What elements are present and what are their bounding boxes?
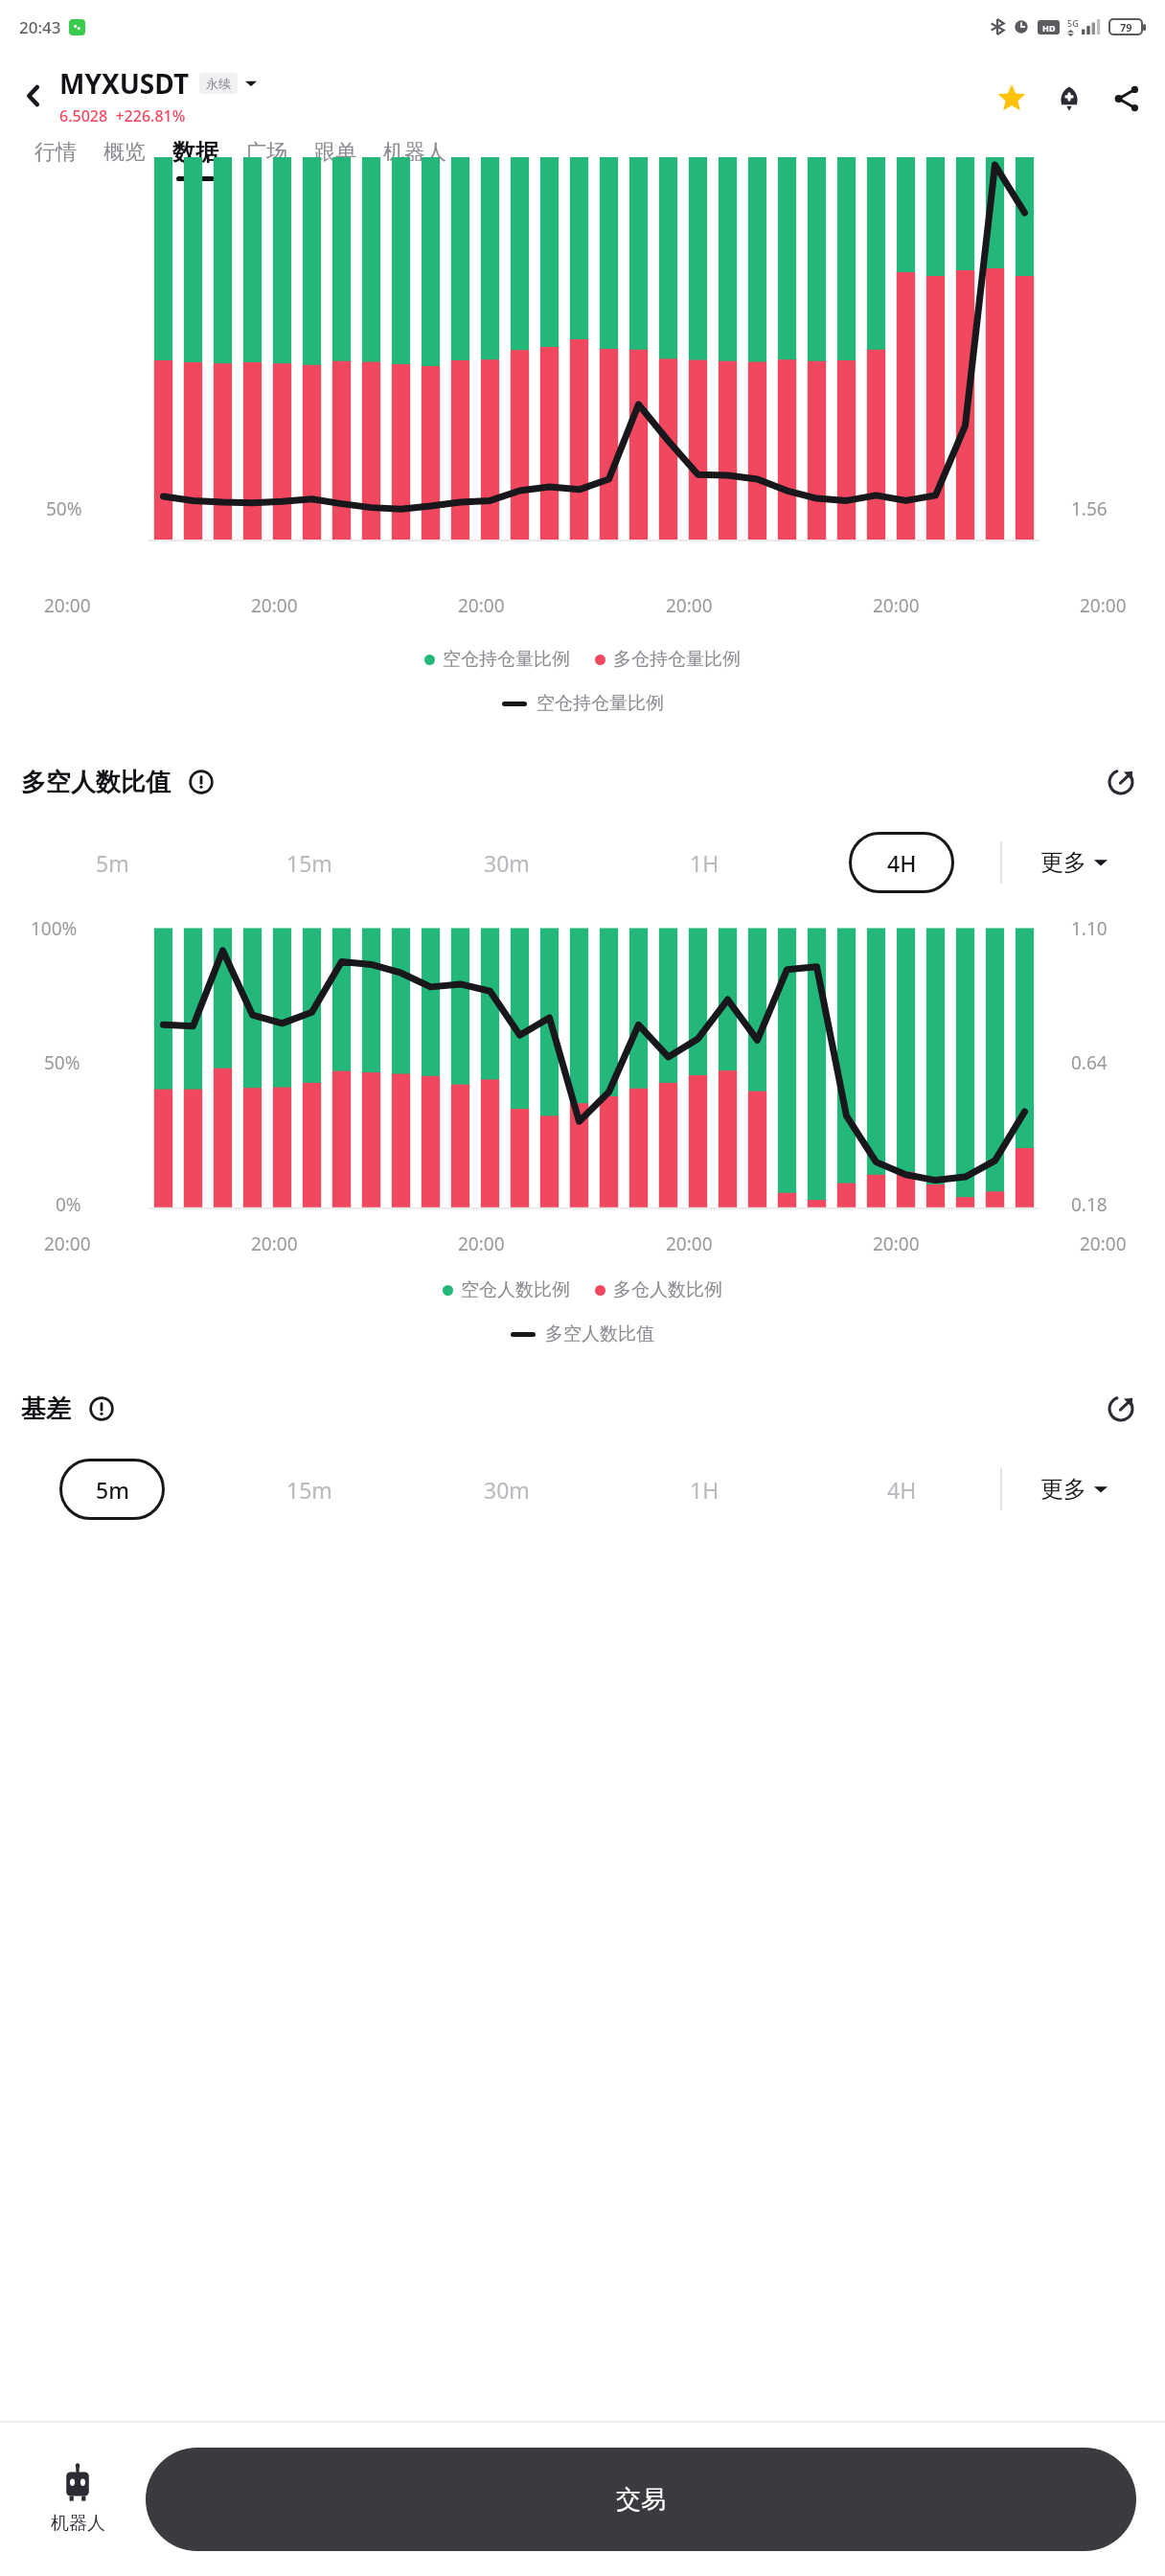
staticText: 0.64: [1071, 1050, 1108, 1075]
button[interactable]: 15m: [211, 1456, 408, 1523]
staticText: 永续: [206, 76, 231, 91]
staticText: 20:00: [666, 1231, 713, 1256]
staticText: 15m: [286, 848, 332, 878]
staticText: 更多: [1040, 1475, 1086, 1504]
button[interactable]: Expand chart: [1098, 1386, 1144, 1432]
staticText: 5m: [96, 848, 129, 878]
button[interactable]: 更多: [1002, 829, 1146, 896]
button[interactable]: 5m: [13, 829, 211, 896]
staticText: 20:00: [666, 593, 713, 618]
staticText: HD: [1042, 22, 1056, 34]
button[interactable]: 跟单: [301, 139, 370, 180]
staticText: 数据: [172, 138, 218, 167]
staticText: 机器人: [51, 2512, 105, 2535]
staticText: 20:00: [1080, 1231, 1127, 1256]
staticText: 20:00: [458, 593, 505, 618]
button[interactable]: 4H: [803, 829, 1000, 896]
staticText: 20:00: [44, 1231, 91, 1256]
staticText: 50%: [44, 1050, 80, 1075]
button[interactable]: Info: [182, 763, 220, 801]
staticText: 20:00: [1080, 593, 1127, 618]
button[interactable]: 数据: [159, 138, 232, 181]
staticText: 4H: [887, 848, 917, 878]
button[interactable]: Favorite: [989, 76, 1035, 122]
button[interactable]: 机器人: [25, 2423, 130, 2576]
staticText: 概览: [103, 139, 146, 166]
staticText: 5m: [96, 1475, 129, 1505]
button[interactable]: Expand chart: [1098, 759, 1144, 805]
staticText: 机器人: [383, 139, 446, 166]
button[interactable]: 1H: [605, 1456, 803, 1523]
staticText: 30m: [484, 848, 530, 878]
staticText: 6.5028 +226.81%: [59, 105, 186, 126]
button[interactable]: Alerts: [1046, 76, 1092, 122]
staticText: 多空人数比值: [545, 1322, 654, 1345]
staticText: 更多: [1040, 848, 1086, 877]
staticText: 多空人数比值: [21, 767, 171, 798]
button[interactable]: 4H: [803, 1456, 1000, 1523]
button[interactable]: Back: [10, 72, 57, 120]
staticText: 4H: [887, 1475, 917, 1505]
button[interactable]: 15m: [211, 829, 408, 896]
button[interactable]: Share: [1104, 76, 1150, 122]
staticText: 跟单: [314, 139, 356, 166]
staticText: 多仓人数比例: [613, 1278, 722, 1301]
staticText: 30m: [484, 1475, 530, 1505]
staticText: 交易: [616, 2484, 666, 2516]
staticText: 20:00: [873, 1231, 920, 1256]
button[interactable]: 机器人: [370, 139, 460, 180]
staticText: 0.18: [1071, 1192, 1108, 1217]
staticText: 行情: [34, 139, 77, 166]
staticText: 20:00: [873, 593, 920, 618]
button[interactable]: 30m: [408, 1456, 605, 1523]
button[interactable]: 概览: [90, 139, 159, 180]
staticText: 多仓持仓量比例: [613, 648, 741, 671]
staticText: 20:00: [251, 593, 298, 618]
staticText: 79: [1120, 20, 1132, 34]
staticText: 20:43: [19, 16, 61, 38]
staticText: 0%: [56, 1192, 81, 1217]
staticText: 20:00: [251, 1231, 298, 1256]
staticText: 100%: [31, 916, 78, 941]
staticText: 20:00: [44, 593, 91, 618]
button[interactable]: 5m: [13, 1456, 211, 1523]
staticText: 5G: [1067, 17, 1079, 29]
button[interactable]: 行情: [21, 139, 90, 180]
button[interactable]: 广场: [232, 139, 301, 180]
staticText: 1H: [690, 1475, 720, 1505]
button[interactable]: 1H: [605, 829, 803, 896]
staticText: 15m: [286, 1475, 332, 1505]
button[interactable]: 交易: [146, 2448, 1136, 2551]
button[interactable]: 更多: [1002, 1456, 1146, 1523]
staticText: 1.10: [1071, 916, 1108, 941]
staticText: 空仓持仓量比例: [537, 692, 664, 715]
staticText: 广场: [245, 139, 287, 166]
staticText: 1H: [690, 848, 720, 878]
staticText: 空仓持仓量比例: [443, 648, 570, 671]
staticText: 20:00: [458, 1231, 505, 1256]
staticText: 50%: [46, 496, 82, 521]
staticText: 基差: [21, 1393, 71, 1425]
staticText: MYXUSDT: [59, 65, 190, 102]
button[interactable]: 30m: [408, 829, 605, 896]
button[interactable]: Info: [82, 1390, 121, 1428]
staticText: 空仓人数比例: [461, 1278, 570, 1301]
staticText: 1.56: [1071, 496, 1108, 521]
